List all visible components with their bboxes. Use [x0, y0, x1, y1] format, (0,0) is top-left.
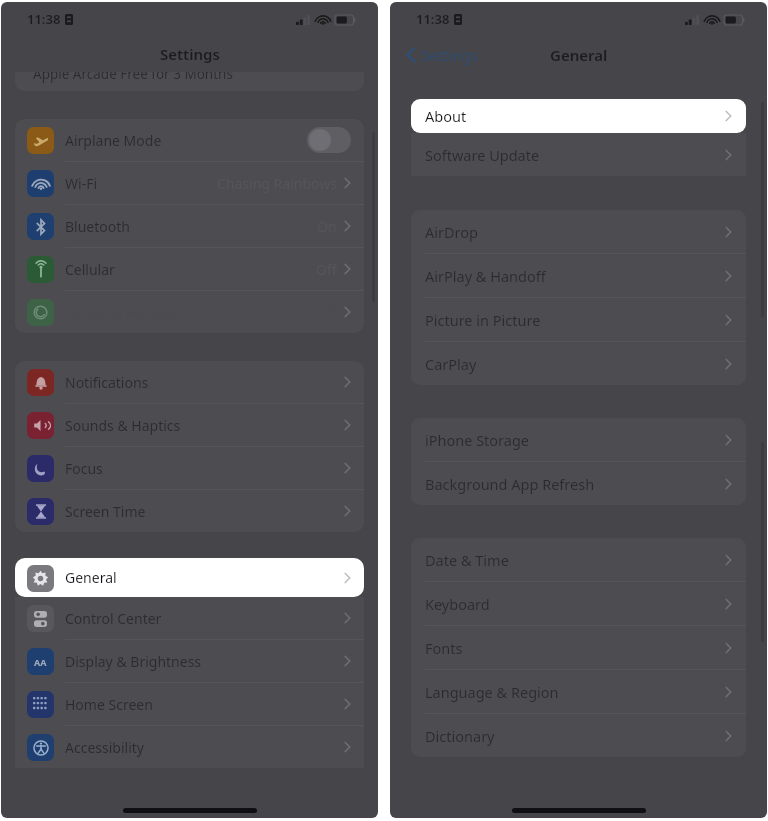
button[interactable]: Picture in Picture [411, 298, 746, 341]
staticText: Language & Region [425, 682, 559, 702]
staticText: 11:38 [27, 10, 61, 28]
staticText: CarPlay [425, 354, 477, 374]
staticText: Settings [160, 44, 220, 64]
button[interactable]: Screen Time [15, 490, 364, 532]
button[interactable]: Focus [15, 447, 364, 489]
staticText: Focus [65, 459, 103, 478]
staticText: iPhone Storage [425, 430, 530, 450]
staticText: Apple Arcade Free for 3 Months [33, 72, 233, 83]
staticText: Off [316, 260, 337, 279]
button[interactable]: Settings [402, 41, 483, 69]
button[interactable]: Software Update [411, 133, 746, 176]
staticText: Date & Time [425, 550, 509, 570]
staticText: Background App Refresh [425, 474, 595, 494]
button[interactable]: Notifications [15, 361, 364, 403]
staticText: AirPlay & Handoff [425, 266, 546, 286]
staticText: 11:38 [416, 10, 450, 28]
button[interactable]: Dictionary [411, 714, 746, 757]
button[interactable]: Home Screen [15, 683, 364, 725]
button[interactable]: Background App Refresh [411, 462, 746, 505]
staticText: AirDrop [425, 222, 478, 242]
button[interactable]: Control Center [15, 597, 364, 639]
staticText: General [65, 568, 117, 587]
staticText: Wi-Fi [65, 174, 98, 193]
button[interactable]: CarPlay [411, 342, 746, 385]
staticText: Dictionary [425, 726, 495, 746]
button[interactable]: Cellular [15, 248, 364, 290]
staticText: Notifications [65, 373, 149, 392]
staticText: Software Update [425, 145, 540, 165]
staticText: Settings [421, 45, 479, 65]
staticText: Control Center [65, 609, 162, 628]
button[interactable]: Date & Time [411, 538, 746, 581]
button[interactable]: AirDrop [411, 210, 746, 253]
staticText: About [425, 106, 467, 126]
button[interactable]: Sounds & Haptics [15, 404, 364, 446]
button[interactable]: Airplane Mode [15, 119, 364, 161]
staticText: Home Screen [65, 695, 153, 714]
button[interactable]: General [15, 558, 364, 597]
button[interactable]: Personal Hotspot [15, 291, 364, 333]
button[interactable]: AA [15, 640, 364, 682]
button[interactable]: Bluetooth [15, 205, 364, 247]
button[interactable]: Accessibility [15, 726, 364, 768]
staticText: Screen Time [65, 502, 146, 521]
staticText: AA [34, 656, 47, 668]
staticText: Airplane Mode [65, 131, 162, 150]
button[interactable]: Language & Region [411, 670, 746, 713]
staticText: Cellular [65, 260, 115, 279]
button[interactable]: Keyboard [411, 582, 746, 625]
staticText: Picture in Picture [425, 310, 541, 330]
button[interactable]: Wi-Fi [15, 162, 364, 204]
staticText: Chasing Rainbows [217, 174, 337, 193]
staticText: General [550, 45, 608, 65]
staticText: Display & Brightness [65, 652, 202, 671]
button[interactable]: iPhone Storage [411, 418, 746, 461]
staticText: Bluetooth [65, 217, 130, 236]
staticText: Keyboard [425, 594, 490, 614]
button[interactable]: About [411, 99, 746, 133]
button[interactable]: Airplane Mode toggle [307, 127, 351, 153]
button[interactable]: AirPlay & Handoff [411, 254, 746, 297]
staticText: Accessibility [65, 738, 144, 757]
staticText: Fonts [425, 638, 463, 658]
staticText: Sounds & Haptics [65, 416, 181, 435]
